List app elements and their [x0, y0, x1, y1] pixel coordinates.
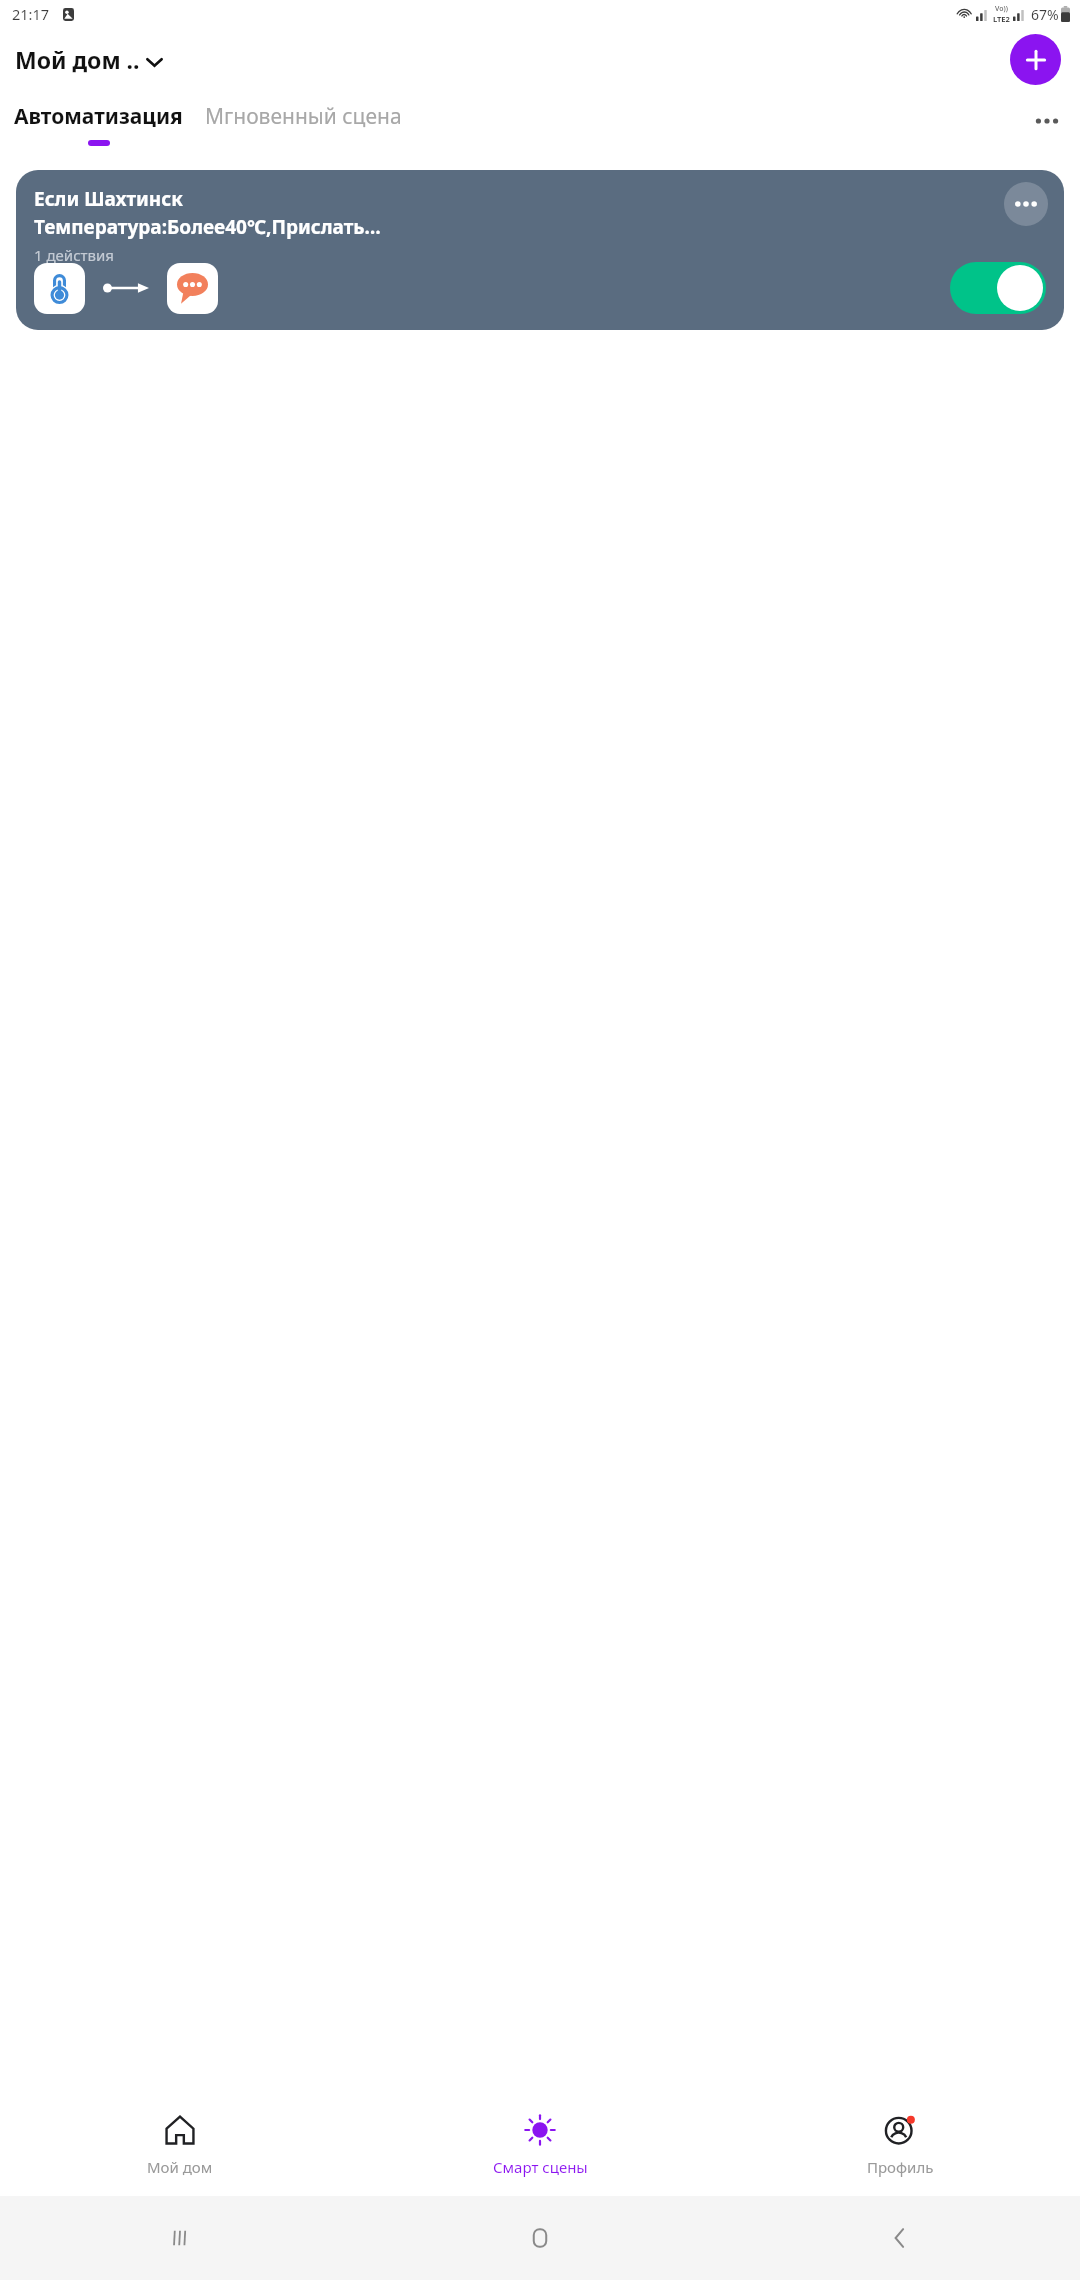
staticText: Мой дом .. — [15, 44, 140, 75]
staticText: 67% — [1031, 5, 1059, 24]
button[interactable]: Мгновенный сцена — [205, 90, 1026, 131]
staticText: Мой дом — [147, 2157, 213, 2177]
button[interactable]: More options — [1004, 182, 1048, 226]
staticText: Смарт сцены — [493, 2157, 588, 2177]
staticText: Мгновенный сцена — [205, 102, 402, 131]
button[interactable]: More tabs — [1026, 100, 1068, 142]
staticText: Профиль — [867, 2157, 934, 2177]
staticText: Vo)) — [995, 4, 1008, 14]
staticText: Температура:Более40℃,Прислать… — [34, 214, 381, 240]
button[interactable]: Automation enabled — [950, 262, 1046, 314]
button[interactable]: Профиль — [720, 2104, 1080, 2185]
button[interactable]: Мой дом .. — [12, 40, 166, 79]
button[interactable]: Recents — [0, 2196, 360, 2280]
staticText: 21:17 — [12, 4, 50, 24]
button[interactable]: Home — [360, 2196, 720, 2280]
button[interactable]: Add — [1010, 34, 1061, 85]
staticText: LTE2 — [993, 14, 1010, 24]
button[interactable]: Смарт сцены — [360, 2104, 720, 2185]
staticText: Если Шахтинск — [34, 186, 183, 212]
staticText: 1 действия — [34, 245, 114, 265]
button[interactable]: Если Шахтинск — [16, 170, 1064, 330]
button[interactable]: Мой дом — [0, 2104, 360, 2185]
button[interactable]: Автоматизация — [14, 90, 183, 146]
button[interactable]: Back — [720, 2196, 1080, 2280]
staticText: Автоматизация — [14, 102, 183, 131]
